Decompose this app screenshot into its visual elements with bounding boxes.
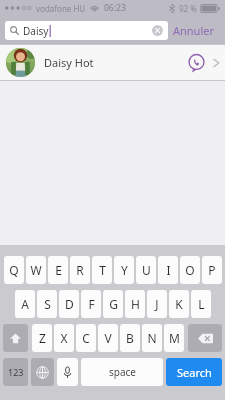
staticText: Q	[9, 262, 19, 278]
button[interactable]: Annuler	[168, 19, 220, 42]
staticText: N	[147, 330, 157, 346]
staticText: V	[104, 330, 112, 346]
button[interactable]: Daisy Hot	[0, 45, 225, 80]
button[interactable]: space	[81, 358, 163, 386]
button[interactable]: O	[180, 256, 200, 284]
button[interactable]: Shift	[3, 324, 28, 352]
staticText: L	[198, 296, 205, 312]
button[interactable]: B	[120, 324, 140, 352]
staticText: vodafone HU	[36, 3, 86, 14]
button[interactable]: K	[169, 290, 189, 318]
button[interactable]: G	[103, 290, 123, 318]
button[interactable]: Backspace	[188, 324, 222, 352]
button[interactable]: Dictation	[57, 358, 78, 386]
button[interactable]: J	[147, 290, 167, 318]
staticText: 92 %	[179, 3, 197, 14]
staticText: X	[60, 330, 68, 346]
staticText: Daisy Hot	[44, 55, 94, 70]
staticText: G	[109, 296, 118, 312]
button[interactable]: W	[26, 256, 46, 284]
button[interactable]: S	[37, 290, 57, 318]
button[interactable]: F	[81, 290, 101, 318]
button[interactable]: L	[191, 290, 211, 318]
staticText: 123	[8, 366, 24, 378]
button[interactable]: D	[59, 290, 79, 318]
staticText: J	[155, 296, 159, 312]
staticText: O	[185, 262, 195, 278]
button[interactable]: Change keyboard	[31, 358, 54, 386]
button[interactable]: R	[70, 256, 90, 284]
button[interactable]: M	[164, 324, 184, 352]
staticText: D	[65, 296, 74, 312]
button[interactable]: Viber call	[188, 54, 205, 71]
staticText: A	[21, 296, 29, 312]
button[interactable]: X	[54, 324, 74, 352]
button[interactable]: P	[202, 256, 222, 284]
staticText: Y	[121, 262, 128, 278]
staticText: T	[99, 262, 106, 278]
staticText: U	[142, 262, 151, 278]
button[interactable]: H	[125, 290, 145, 318]
button[interactable]: Z	[32, 324, 52, 352]
staticText: K	[175, 296, 183, 312]
staticText: E	[55, 262, 62, 278]
button[interactable]: E	[48, 256, 68, 284]
button[interactable]: A	[15, 290, 35, 318]
button[interactable]: 123	[3, 358, 28, 386]
staticText: 06:23	[104, 2, 126, 14]
button[interactable]: Clear text	[152, 25, 163, 36]
button[interactable]: Q	[4, 256, 24, 284]
button[interactable]: Y	[114, 256, 134, 284]
staticText: space	[109, 365, 136, 379]
staticText: S	[44, 296, 51, 312]
staticText: Z	[39, 330, 46, 346]
staticText: M	[169, 330, 180, 346]
staticText: H	[131, 296, 140, 312]
button[interactable]: Daisy	[5, 21, 168, 40]
button[interactable]: C	[76, 324, 96, 352]
staticText: P	[208, 262, 216, 278]
button[interactable]: T	[92, 256, 112, 284]
staticText: R	[76, 262, 84, 278]
staticText: W	[30, 262, 42, 278]
staticText: Daisy	[23, 24, 49, 38]
staticText: Annuler	[173, 23, 215, 38]
button[interactable]: U	[136, 256, 156, 284]
button[interactable]: I	[158, 256, 178, 284]
staticText: C	[82, 330, 90, 346]
button[interactable]: V	[98, 324, 118, 352]
staticText: I	[166, 262, 171, 278]
button[interactable]: Search	[166, 358, 222, 386]
staticText: B	[126, 330, 134, 346]
button[interactable]: N	[142, 324, 162, 352]
staticText: F	[88, 296, 95, 312]
staticText: Search	[177, 365, 212, 380]
